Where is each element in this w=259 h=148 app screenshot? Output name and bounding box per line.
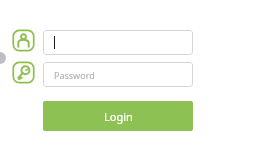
button[interactable]: Login — [43, 101, 193, 131]
button[interactable] — [43, 30, 193, 55]
button[interactable]: Password — [43, 62, 193, 87]
button[interactable]: User name — [12, 29, 35, 52]
staticText: Password — [54, 69, 95, 81]
staticText: Login — [104, 109, 133, 124]
button[interactable]: Password — [12, 61, 35, 84]
